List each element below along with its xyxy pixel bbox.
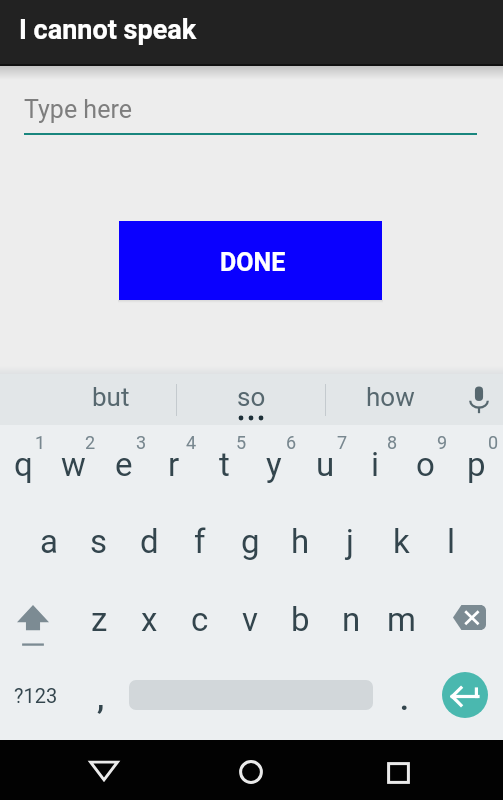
staticText: 4 [186, 432, 197, 453]
staticText: 8 [387, 432, 398, 453]
staticText: I cannot speak [19, 14, 197, 46]
button[interactable]: Home [238, 760, 263, 784]
button[interactable]: x [124, 588, 174, 650]
button[interactable]: 4 [149, 427, 199, 489]
button[interactable]: h [275, 510, 325, 572]
staticText: Type here [24, 95, 132, 124]
staticText: 3 [136, 432, 147, 453]
staticText: 1 [35, 432, 46, 453]
button[interactable]: 7 [300, 427, 350, 489]
button[interactable]: 3 [99, 427, 149, 489]
button[interactable]: Back [89, 758, 119, 782]
staticText: i [371, 445, 380, 484]
button[interactable]: s [74, 510, 124, 572]
button[interactable]: , [78, 670, 124, 720]
button[interactable]: how [325, 374, 455, 425]
button[interactable]: l [426, 510, 476, 572]
staticText: a [40, 522, 58, 561]
staticText: DONE [220, 248, 286, 277]
button[interactable]: ?123 [4, 670, 68, 720]
button[interactable]: 2 [48, 427, 98, 489]
staticText: o [416, 445, 435, 484]
staticText: y [266, 445, 282, 484]
button[interactable]: 8 [350, 427, 400, 489]
staticText: p [467, 445, 486, 484]
button[interactable]: b [275, 588, 325, 650]
button[interactable]: j [325, 510, 375, 572]
staticText: 5 [236, 432, 247, 453]
staticText: 6 [286, 432, 297, 453]
staticText: 2 [85, 432, 96, 453]
button[interactable]: z [74, 588, 124, 650]
staticText: ?123 [14, 684, 58, 707]
button[interactable]: 6 [249, 427, 299, 489]
staticText: r [168, 445, 180, 484]
button[interactable]: Backspace [444, 586, 494, 648]
staticText: h [291, 522, 310, 561]
button[interactable]: . [381, 670, 427, 720]
staticText: 9 [437, 432, 448, 453]
button[interactable]: n [326, 588, 376, 650]
staticText: 7 [337, 432, 348, 453]
staticText: b [291, 600, 310, 639]
button[interactable]: Recents [386, 761, 411, 785]
button[interactable]: I cannot speak [0, 0, 503, 64]
staticText: how [366, 382, 415, 412]
staticText: j [346, 522, 354, 561]
button[interactable]: c [175, 588, 225, 650]
staticText: g [241, 522, 260, 561]
button[interactable]: f [175, 510, 225, 572]
staticText: v [242, 600, 258, 639]
staticText: s [90, 522, 108, 561]
staticText: q [14, 445, 33, 484]
button[interactable]: 9 [400, 427, 450, 489]
button[interactable]: Enter [442, 672, 488, 718]
staticText: x [141, 600, 158, 639]
button[interactable]: DONE [119, 221, 382, 300]
button[interactable]: k [376, 510, 426, 572]
staticText: u [316, 445, 335, 484]
button[interactable]: m [376, 588, 426, 650]
button[interactable]: v [225, 588, 275, 650]
staticText: t [219, 445, 230, 484]
button[interactable]: d [124, 510, 174, 572]
staticText: e [115, 445, 133, 484]
button[interactable]: but [45, 374, 176, 425]
staticText: l [447, 522, 456, 561]
staticText: . [400, 682, 409, 717]
button[interactable]: so [177, 374, 325, 425]
button[interactable]: 5 [199, 427, 249, 489]
staticText: 0 [488, 432, 499, 453]
staticText: m [387, 600, 416, 639]
staticText: so [237, 382, 266, 412]
button[interactable]: 1 [0, 427, 48, 489]
staticText: z [91, 600, 108, 639]
staticText: c [191, 600, 209, 639]
staticText: k [393, 522, 410, 561]
staticText: , [97, 681, 105, 716]
button[interactable]: Type here [24, 94, 477, 135]
staticText: f [194, 522, 206, 561]
staticText: w [61, 445, 86, 484]
staticText: d [140, 522, 159, 561]
button[interactable]: Voice input [455, 374, 503, 425]
staticText: n [342, 600, 361, 639]
button[interactable]: Shift [8, 595, 58, 657]
button[interactable]: a [24, 510, 74, 572]
button[interactable]: g [225, 510, 275, 572]
button[interactable]: 0 [451, 427, 501, 489]
staticText: but [92, 382, 130, 412]
